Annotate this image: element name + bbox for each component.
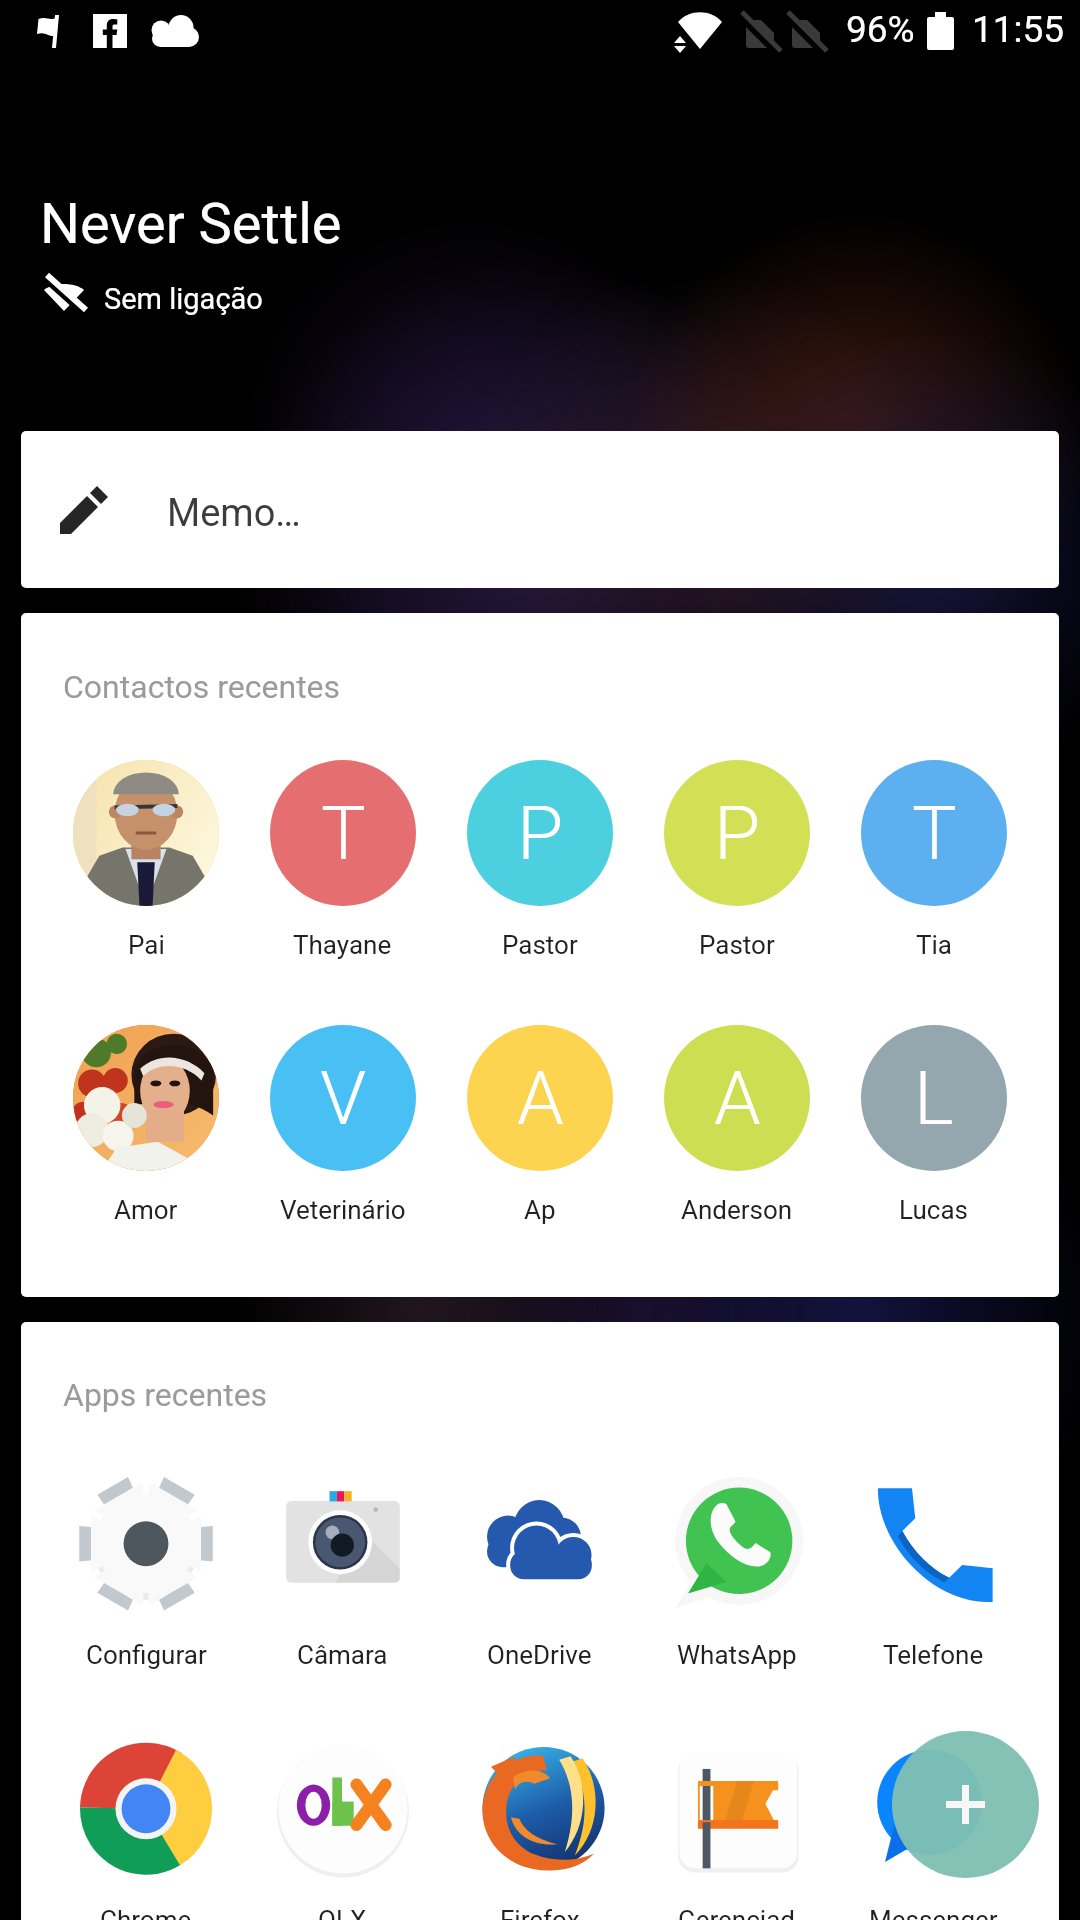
staticText: Never Settle: [40, 191, 342, 257]
staticText: Amor: [114, 1195, 178, 1225]
staticText: Pastor: [699, 930, 775, 960]
staticText: Pastor: [502, 930, 578, 960]
button[interactable]: Telefone: [835, 1472, 1032, 1670]
staticText: OLX: [318, 1905, 367, 1920]
button[interactable]: T: [244, 760, 441, 960]
button[interactable]: Configurar: [48, 1472, 244, 1670]
staticText: Messenger: [869, 1905, 998, 1920]
staticText: Telefone: [883, 1640, 984, 1670]
staticText: T: [912, 789, 957, 877]
button[interactable]: L: [835, 1025, 1032, 1225]
staticText: A: [714, 1054, 761, 1142]
staticText: V: [320, 1054, 367, 1142]
staticText: A: [517, 1054, 564, 1142]
staticText: WhatsApp: [677, 1640, 797, 1670]
staticText: Câmara: [297, 1640, 388, 1670]
button[interactable]: Câmara: [244, 1472, 441, 1670]
button[interactable]: OneDrive: [441, 1472, 638, 1670]
button[interactable]: A: [441, 1025, 638, 1225]
staticText: Sem ligação: [104, 282, 263, 316]
staticText: 11:55: [972, 8, 1065, 51]
staticText: Memo…: [167, 491, 301, 536]
staticText: Gerenciad: [678, 1905, 795, 1920]
staticText: OneDrive: [487, 1640, 592, 1670]
button[interactable]: Amor: [48, 1025, 244, 1225]
button[interactable]: OLX: [244, 1737, 441, 1920]
staticText: Configurar: [86, 1640, 207, 1670]
staticText: Pai: [128, 930, 165, 960]
button[interactable]: V: [244, 1025, 441, 1225]
staticText: Thayane: [293, 930, 392, 960]
staticText: Firefox: [500, 1905, 580, 1920]
button[interactable]: Messenger: [835, 1737, 1032, 1920]
staticText: L: [914, 1054, 954, 1142]
button[interactable]: P: [441, 760, 638, 960]
staticText: Apps recentes: [63, 1376, 268, 1414]
button[interactable]: Chrome: [48, 1737, 244, 1920]
staticText: Veterinário: [280, 1195, 406, 1225]
button[interactable]: A: [638, 1025, 835, 1225]
button[interactable]: Firefox: [441, 1737, 638, 1920]
staticText: Chrome: [100, 1905, 192, 1920]
button[interactable]: Add: [892, 1731, 1039, 1878]
button[interactable]: Gerenciad: [638, 1737, 835, 1920]
staticText: Ap: [524, 1195, 556, 1225]
button[interactable]: WhatsApp: [638, 1472, 835, 1670]
button[interactable]: T: [835, 760, 1032, 960]
staticText: P: [517, 789, 564, 877]
staticText: T: [321, 789, 366, 877]
staticText: Tia: [916, 930, 952, 960]
staticText: P: [714, 789, 761, 877]
staticText: Lucas: [899, 1195, 968, 1225]
staticText: 96%: [846, 8, 915, 51]
staticText: Contactos recentes: [63, 668, 341, 706]
button[interactable]: Memo…: [21, 431, 1059, 588]
button[interactable]: P: [638, 760, 835, 960]
button[interactable]: Pai: [48, 760, 244, 960]
staticText: Anderson: [681, 1195, 793, 1225]
